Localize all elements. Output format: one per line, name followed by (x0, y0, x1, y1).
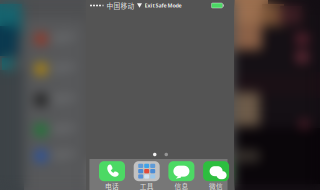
staticText: 信息 (174, 181, 188, 190)
button[interactable]: 电话 (99, 162, 125, 190)
staticText: 微信 (209, 181, 223, 190)
button[interactable]: 信息 (168, 162, 194, 190)
button[interactable]: 微信 (203, 162, 229, 190)
staticText: 中国移动 (106, 1, 134, 10)
staticText: Exit Safe Mode (144, 2, 181, 9)
staticText: 电话 (105, 181, 119, 190)
staticText: 工具 (140, 181, 154, 190)
button[interactable]: 工具 (134, 162, 160, 190)
